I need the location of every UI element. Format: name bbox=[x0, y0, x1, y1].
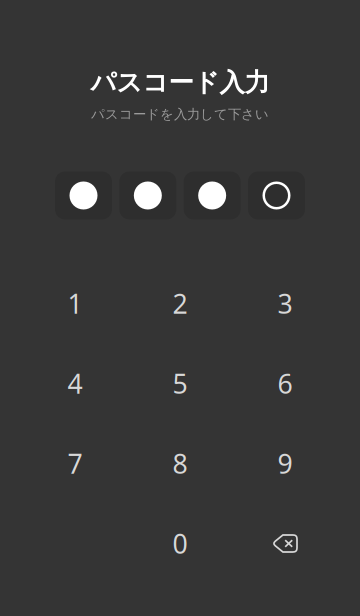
button[interactable]: 2 bbox=[127, 263, 232, 343]
staticText: 7 bbox=[67, 446, 82, 481]
staticText: 8 bbox=[172, 446, 187, 481]
button[interactable]: 8 bbox=[127, 423, 232, 503]
button[interactable]: 9 bbox=[232, 423, 337, 503]
button[interactable]: 4 bbox=[22, 343, 127, 423]
staticText: 2 bbox=[172, 286, 187, 321]
staticText: パスコードを入力して下さい bbox=[91, 106, 269, 122]
button[interactable]: 0 bbox=[127, 503, 232, 583]
button[interactable]: 1 bbox=[22, 263, 127, 343]
button[interactable]: 7 bbox=[22, 423, 127, 503]
button[interactable]: Delete bbox=[232, 503, 337, 583]
staticText: 4 bbox=[67, 366, 82, 401]
staticText: 3 bbox=[277, 286, 292, 321]
staticText: 6 bbox=[277, 366, 292, 401]
staticText: パスコード入力 bbox=[90, 67, 269, 98]
staticText: 0 bbox=[172, 526, 187, 561]
button[interactable]: 6 bbox=[232, 343, 337, 423]
button[interactable]: 5 bbox=[127, 343, 232, 423]
staticText: 9 bbox=[277, 446, 292, 481]
staticText: 5 bbox=[172, 366, 187, 401]
button[interactable]: 3 bbox=[232, 263, 337, 343]
staticText: 1 bbox=[67, 286, 82, 321]
